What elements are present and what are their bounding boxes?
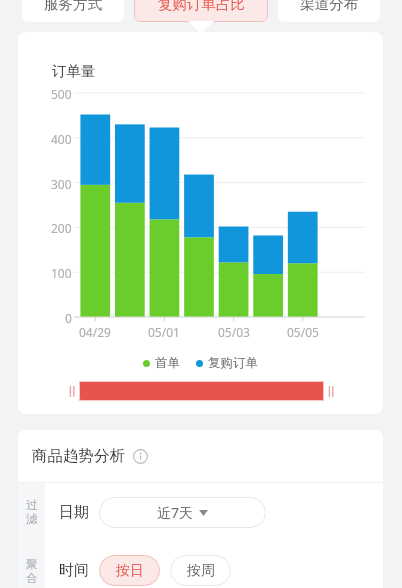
staticText: 04/29: [79, 324, 111, 340]
button[interactable]: 按日: [99, 555, 160, 586]
staticText: 复购订单占比: [158, 0, 245, 13]
staticText: 05/05: [287, 324, 319, 340]
staticText: 商品趋势分析: [32, 446, 125, 466]
staticText: 合: [26, 571, 38, 585]
staticText: 聚: [26, 557, 38, 571]
staticText: 按日: [116, 562, 144, 580]
staticText: 复购订单: [208, 355, 258, 371]
staticText: 服务方式: [44, 0, 102, 13]
staticText: 300: [51, 176, 72, 192]
button[interactable]: 近7天: [99, 497, 266, 528]
staticText: 按周: [187, 562, 215, 580]
staticText: 0: [65, 310, 72, 326]
button[interactable]: 渠道分布: [278, 0, 380, 22]
staticText: 05/03: [218, 324, 250, 340]
staticText: 首单: [155, 355, 180, 371]
button[interactable]: 说明: [132, 448, 148, 464]
staticText: 200: [51, 220, 72, 236]
button[interactable]: 复购订单占比: [134, 0, 268, 22]
staticText: 滤: [26, 512, 38, 526]
staticText: 日期: [59, 503, 89, 522]
staticText: 时间: [59, 561, 89, 580]
staticText: 过: [26, 498, 38, 512]
button[interactable]: 按周: [170, 555, 231, 586]
button[interactable]: 首单: [143, 355, 180, 371]
staticText: 订单量: [52, 62, 96, 80]
staticText: 05/01: [148, 324, 180, 340]
staticText: 100: [51, 265, 72, 281]
button[interactable]: 调整时间范围: [65, 380, 338, 402]
staticText: 400: [51, 131, 72, 147]
button[interactable]: 复购订单: [196, 355, 258, 371]
staticText: 500: [51, 86, 72, 102]
button[interactable]: 服务方式: [22, 0, 124, 22]
staticText: 渠道分布: [300, 0, 358, 13]
staticText: 近7天: [157, 503, 194, 522]
